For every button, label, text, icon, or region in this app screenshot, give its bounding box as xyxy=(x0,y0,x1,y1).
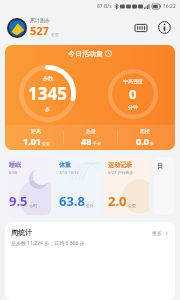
button[interactable]: Info xyxy=(156,19,173,36)
staticText: 7/13 10:13 xyxy=(59,170,79,175)
staticText: 6/30 xyxy=(9,170,18,175)
staticText: 0 xyxy=(129,85,137,103)
button[interactable]: 运动记录 xyxy=(104,157,149,215)
staticText: 0.0 xyxy=(136,135,149,147)
staticText: 累计跑步 xyxy=(30,17,50,23)
staticText: 热量 xyxy=(86,128,96,134)
staticText: 爬楼 xyxy=(140,128,150,134)
staticText: 周统计 xyxy=(11,228,32,237)
staticText: 63.8 xyxy=(59,192,85,210)
staticText: 步数 xyxy=(43,75,53,81)
button[interactable]: 周统计 xyxy=(5,222,175,300)
staticText: 527 xyxy=(30,23,49,38)
button[interactable]: 步数 xyxy=(19,65,76,122)
staticText: 体重 xyxy=(59,161,71,169)
button[interactable]: 日 xyxy=(153,157,175,215)
staticText: 公里 xyxy=(42,141,50,146)
staticText: 1345 xyxy=(28,82,67,105)
staticText: 公斤 xyxy=(86,203,94,208)
button[interactable]: 爬楼 xyxy=(118,128,171,147)
staticText: 今日活动量 xyxy=(68,49,103,58)
button[interactable]: 热量 xyxy=(64,128,117,147)
staticText: 16:22 xyxy=(163,3,176,10)
button[interactable]: 今日活动量 xyxy=(5,45,175,150)
button[interactable]: 中高强度 xyxy=(108,69,158,119)
staticText: 2.0 xyxy=(108,192,127,210)
button[interactable]: 距离 xyxy=(9,128,63,147)
staticText: 公里 xyxy=(128,203,136,208)
staticText: 分钟 xyxy=(128,104,138,110)
staticText: 中高强度 xyxy=(123,78,143,84)
button[interactable]: 体重 xyxy=(55,157,100,215)
staticText: 总步数 11,224 步，日均 6,566 步 xyxy=(11,240,85,247)
staticText: 千卡 xyxy=(93,141,101,146)
button[interactable]: 累计跑步 xyxy=(7,17,59,38)
staticText: 日 xyxy=(157,162,163,170)
staticText: 米 xyxy=(150,141,154,146)
staticText: 睡眠 xyxy=(9,161,21,169)
staticText: 9.5 xyxy=(9,192,28,210)
button[interactable]: 更多 xyxy=(152,230,169,236)
staticText: 步 xyxy=(45,106,50,112)
staticText: 87 B/s xyxy=(97,3,112,10)
staticText: 公里 xyxy=(51,32,59,37)
button[interactable]: 睡眠 xyxy=(5,157,51,215)
staticText: 48 xyxy=(81,135,92,147)
staticText: 1.01 xyxy=(23,135,41,147)
staticText: 距离 xyxy=(31,128,41,134)
staticText: 小时 xyxy=(29,203,37,208)
staticText: 6/27 户外跑步 xyxy=(108,170,134,175)
staticText: 更多 xyxy=(152,230,162,236)
staticText: 运动记录 xyxy=(108,161,132,169)
button[interactable]: Devices xyxy=(132,19,149,36)
